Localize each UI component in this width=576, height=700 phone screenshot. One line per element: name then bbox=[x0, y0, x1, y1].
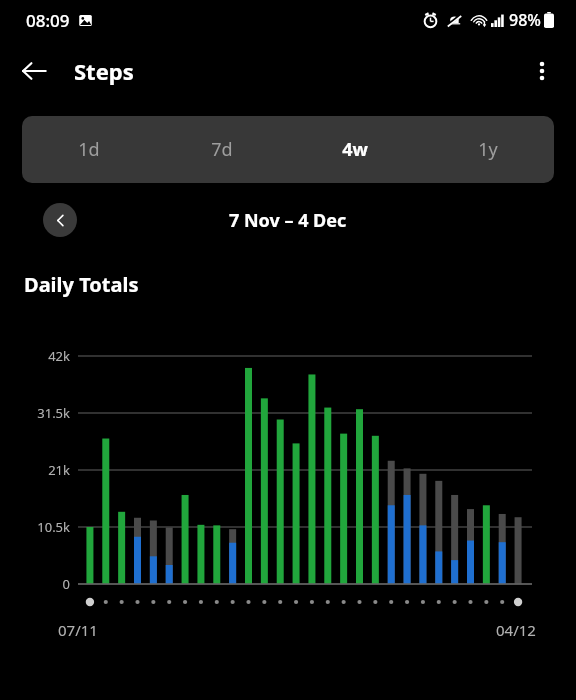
button[interactable]: More options bbox=[520, 49, 564, 93]
button[interactable]: 1d bbox=[22, 116, 155, 183]
button[interactable]: 7d bbox=[155, 116, 288, 183]
staticText: 98% bbox=[509, 9, 541, 31]
button[interactable]: 4w bbox=[288, 116, 421, 183]
staticText: 42k bbox=[48, 347, 70, 365]
staticText: 21k bbox=[48, 461, 70, 479]
staticText: 04/12 bbox=[496, 620, 536, 640]
staticText: 7 Nov – 4 Dec bbox=[229, 208, 347, 233]
button[interactable]: Previous period bbox=[43, 203, 77, 237]
button[interactable]: 1y bbox=[421, 116, 554, 183]
staticText: Daily Totals bbox=[24, 271, 139, 298]
staticText: 4w bbox=[342, 137, 368, 162]
staticText: 10.5k bbox=[37, 518, 70, 536]
staticText: 0 bbox=[62, 575, 70, 593]
staticText: Steps bbox=[74, 56, 134, 86]
staticText: 31.5k bbox=[37, 404, 70, 422]
staticText: 1y bbox=[478, 137, 498, 162]
staticText: 7d bbox=[211, 137, 233, 162]
staticText: 07/11 bbox=[58, 620, 98, 640]
staticText: 1d bbox=[78, 137, 100, 162]
staticText: 08:09 bbox=[26, 9, 70, 32]
button[interactable]: Back bbox=[12, 49, 56, 93]
